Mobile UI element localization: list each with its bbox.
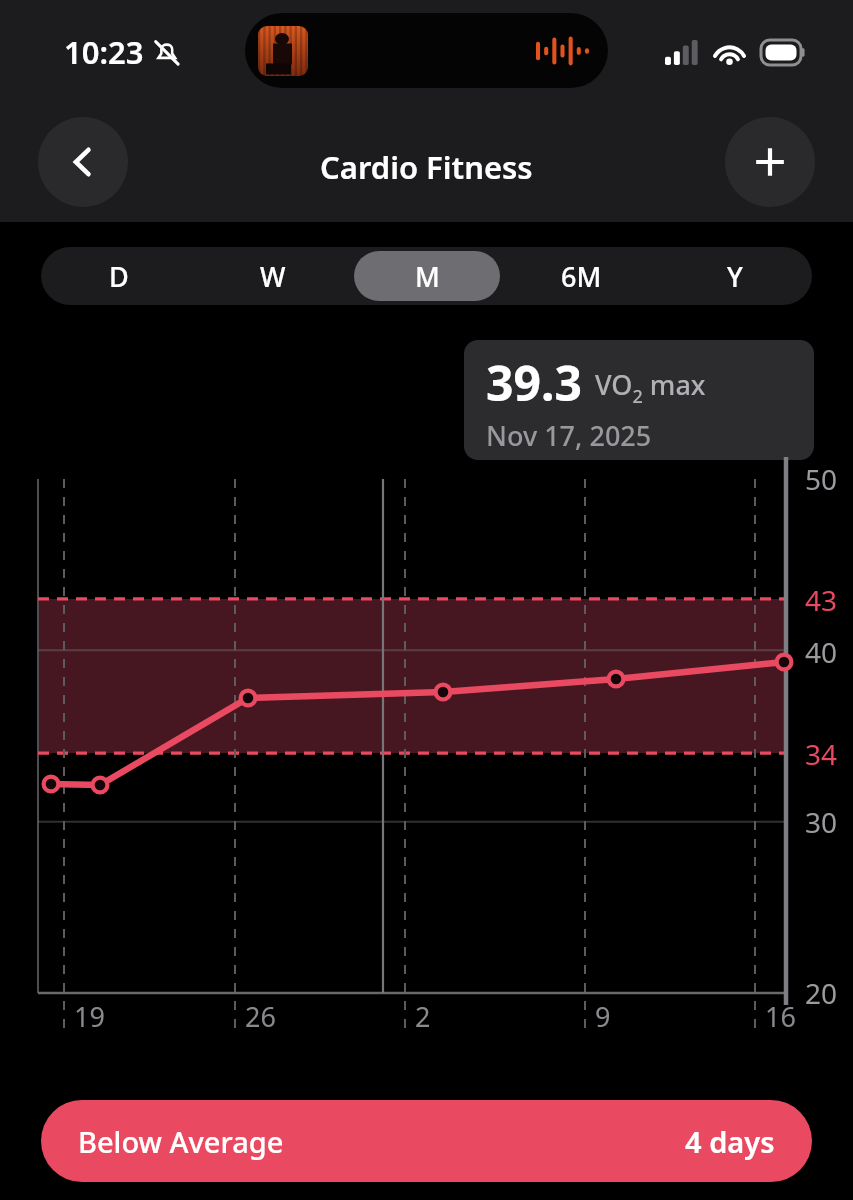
staticText: 20	[805, 974, 838, 1012]
button[interactable]: Back	[38, 117, 128, 207]
staticText: Cardio Fitness	[320, 146, 533, 188]
staticText: 30	[805, 803, 838, 841]
staticText: Y	[727, 258, 743, 295]
staticText: 34	[805, 735, 838, 773]
staticText: 50	[805, 460, 838, 498]
staticText: 4 days	[685, 1122, 775, 1161]
staticText: 16	[765, 998, 796, 1035]
button[interactable]: W	[200, 251, 346, 301]
staticText: VO2 max	[595, 366, 706, 408]
button[interactable]: Y	[662, 251, 808, 301]
staticText: Nov 17, 2025	[486, 417, 652, 454]
button[interactable]: M	[354, 251, 500, 301]
staticText: 10:23	[64, 31, 144, 73]
staticText: 19	[74, 998, 105, 1035]
button[interactable]: 39.3	[464, 340, 814, 460]
staticText: 2	[415, 998, 431, 1035]
staticText: M	[415, 258, 440, 295]
staticText: D	[109, 258, 129, 295]
staticText: 6M	[561, 258, 602, 295]
staticText: 26	[245, 998, 276, 1035]
button[interactable]: D	[45, 251, 192, 301]
staticText: Below Average	[78, 1122, 284, 1161]
staticText: 39.3	[486, 350, 582, 415]
staticText: 43	[805, 581, 838, 619]
button[interactable]: Add	[725, 117, 815, 207]
staticText: 9	[595, 998, 611, 1035]
button[interactable]: 6M	[508, 251, 654, 301]
button[interactable]: Below Average	[41, 1100, 812, 1182]
staticText: W	[260, 258, 286, 295]
staticText: 40	[805, 633, 838, 671]
